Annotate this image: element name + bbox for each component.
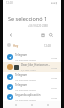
staticText: Un mensaje nuevo: [15, 88, 36, 91]
staticText: ▪ ▪ ▮: [51, 1, 58, 5]
staticText: Se seleccionó 1: [8, 15, 48, 22]
staticText: 12:28: [44, 44, 51, 48]
button[interactable]: Telegram: [3, 52, 61, 62]
staticText: Telegram: [15, 73, 28, 77]
staticText: Hoy: [13, 44, 19, 48]
button[interactable]: Dear_like_Horizon.mp3: [3, 62, 61, 72]
button[interactable]: Delete: [38, 30, 47, 39]
staticText: 12:32: [51, 96, 58, 99]
staticText: Segunda aplicación: [15, 93, 41, 97]
button[interactable]: Telegram: [3, 72, 61, 82]
button[interactable]: Home: [29, 102, 35, 108]
staticText: 3,7 MB · MP3: [21, 68, 36, 71]
staticText: 12:28: [6, 1, 13, 5]
staticText: Un mensaje nuevo: [15, 78, 36, 81]
staticText: Un mensaje nuevo: [15, 58, 36, 61]
button[interactable]: Back: [6, 30, 15, 39]
staticText: +56 9 6220 2388: [28, 24, 48, 28]
staticText: Telegram: [15, 53, 28, 57]
button[interactable]: Recents: [45, 102, 51, 108]
button[interactable]: Search: [46, 30, 55, 39]
button[interactable]: Segunda aplicación: [3, 92, 61, 102]
staticText: Telegram: [15, 83, 28, 87]
button[interactable]: Back: [13, 102, 19, 108]
button[interactable]: Telegram: [3, 82, 61, 92]
staticText: 12:31: [51, 86, 58, 89]
staticText: 12:28: [51, 56, 58, 59]
staticText: 12:30: [51, 76, 58, 79]
staticText: 12:29: [51, 66, 58, 69]
staticText: Dear_like_Horizon.mp3: [21, 63, 51, 67]
staticText: Un mensaje nuevo: [15, 98, 36, 101]
